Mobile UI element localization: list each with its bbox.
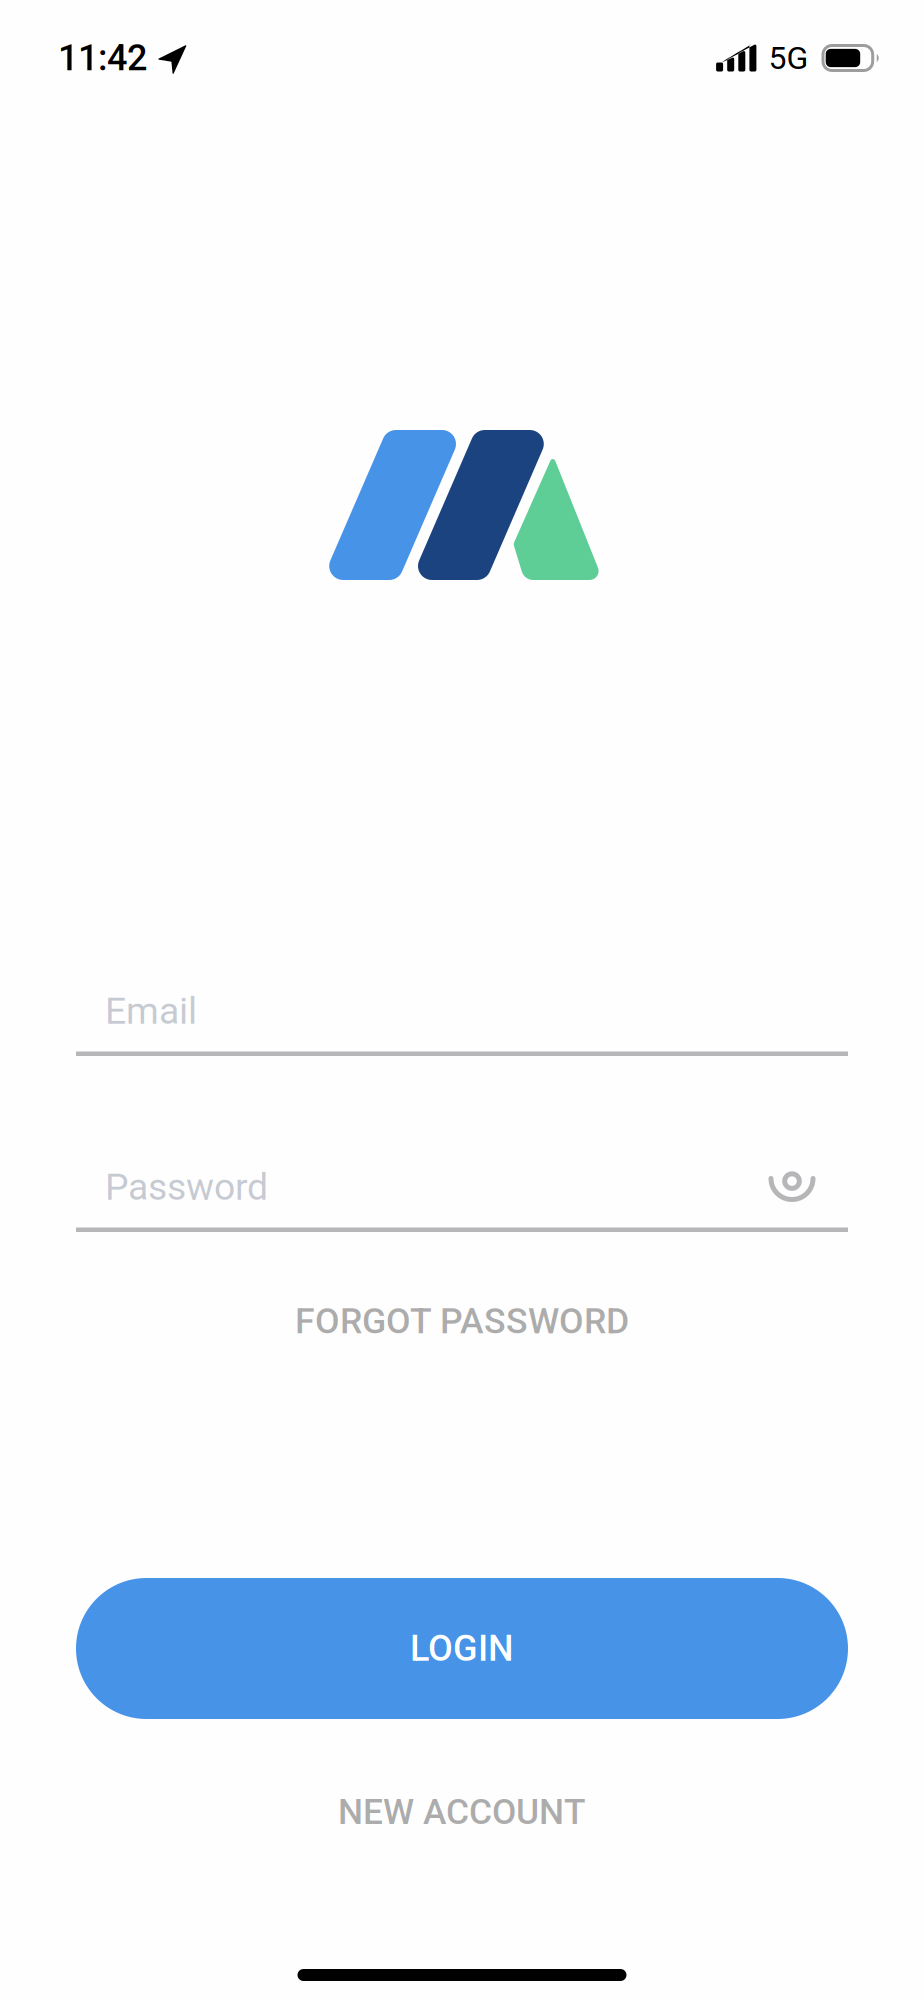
staticText: 11:42 <box>58 37 147 79</box>
staticText: 5G <box>768 39 808 77</box>
staticText: Password <box>105 1165 268 1209</box>
staticText: NEW ACCOUNT <box>338 1791 586 1833</box>
button[interactable]: NEW ACCOUNT <box>314 1790 610 1834</box>
staticText: Email <box>105 989 197 1033</box>
button[interactable]: LOGIN <box>76 1578 848 1719</box>
staticText: FORGOT PASSWORD <box>295 1300 629 1342</box>
button[interactable]: FORGOT PASSWORD <box>271 1299 653 1343</box>
staticText: LOGIN <box>410 1627 514 1670</box>
button[interactable]: Show password <box>759 1163 825 1211</box>
